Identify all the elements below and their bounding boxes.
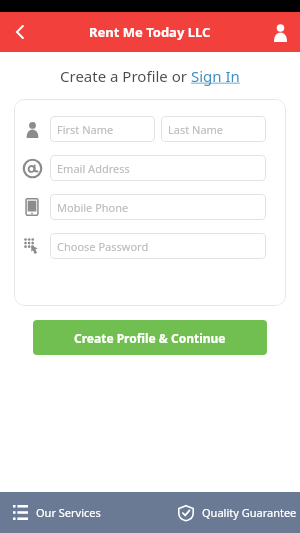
button[interactable]: Back <box>0 12 40 52</box>
staticText: Mobile Phone <box>57 200 129 215</box>
staticText: First Name <box>57 122 114 137</box>
staticText: Create Profile & Continue <box>74 330 226 346</box>
staticText: Our Services <box>36 505 101 520</box>
button[interactable]: Create Profile & Continue <box>33 320 267 355</box>
staticText: Last Name <box>168 122 224 137</box>
button[interactable]: Quality Guarantee <box>150 492 300 533</box>
button[interactable]: Account <box>260 12 300 52</box>
button[interactable]: Mobile Phone <box>50 194 266 220</box>
button[interactable]: Sign In <box>191 66 240 86</box>
button[interactable]: Email Address <box>50 155 266 181</box>
button[interactable]: Last Name <box>161 116 266 142</box>
button[interactable]: Choose Password <box>50 233 266 259</box>
staticText: Rent Me Today LLC <box>89 23 211 41</box>
staticText: Create a Profile or <box>60 66 191 86</box>
staticText: Sign In <box>191 66 240 86</box>
button[interactable]: First Name <box>50 116 155 142</box>
staticText: Quality Guarantee <box>202 505 297 520</box>
staticText: Choose Password <box>57 239 149 254</box>
staticText: Email Address <box>57 161 130 176</box>
button[interactable]: Our Services <box>0 492 150 533</box>
